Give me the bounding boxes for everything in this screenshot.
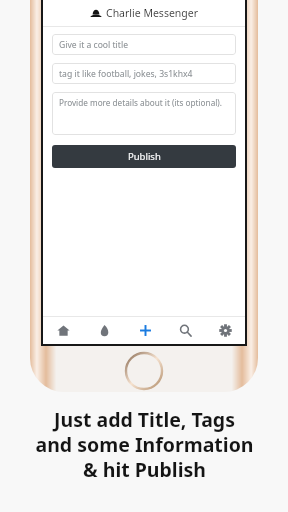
button[interactable]: Publish xyxy=(52,145,236,168)
button[interactable]: Give it a cool title xyxy=(52,34,236,55)
staticText: Just add Title, Tags and some Informatio… xyxy=(35,406,254,482)
button[interactable]: Settings xyxy=(205,317,245,344)
staticText: Publish xyxy=(128,150,161,163)
staticText: tag it like football, jokes, 3s1khx4 xyxy=(59,68,193,80)
button[interactable]: tag it like football, jokes, 3s1khx4 xyxy=(52,63,236,84)
button[interactable]: Search xyxy=(165,317,205,344)
button[interactable]: Home xyxy=(43,317,84,344)
staticText: Charlie Messenger xyxy=(106,6,199,20)
staticText: Give it a cool title xyxy=(59,39,128,51)
staticText: Provide more details about it (its optio… xyxy=(59,97,222,108)
button[interactable]: Provide more details about it (its optio… xyxy=(52,92,236,135)
button[interactable]: Home button xyxy=(124,351,164,391)
button[interactable]: Add post xyxy=(125,317,165,344)
button[interactable]: Trending xyxy=(84,317,125,344)
